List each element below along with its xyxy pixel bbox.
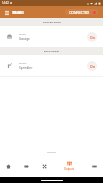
button[interactable]: More xyxy=(85,155,103,177)
button[interactable]: On xyxy=(87,32,97,42)
button[interactable]: Inputs xyxy=(17,155,35,177)
button[interactable]: CONNECTED xyxy=(65,9,98,15)
staticText: BACK ROOM xyxy=(44,50,60,53)
staticText: SYSWARM xyxy=(12,10,23,15)
button[interactable]: On xyxy=(87,61,97,71)
staticText: Sprinkler xyxy=(19,66,33,70)
button[interactable]: Rules xyxy=(35,155,53,177)
staticText: 14:32 xyxy=(2,1,9,5)
button[interactable]: Outputs xyxy=(53,155,85,177)
button[interactable]: PIN#1 xyxy=(0,26,103,47)
staticText: On xyxy=(90,35,95,40)
staticText: On xyxy=(90,64,95,69)
staticText: PIN#2 xyxy=(19,61,27,64)
staticText: Outputs xyxy=(64,167,74,171)
staticText: Garage xyxy=(19,37,30,41)
button[interactable]: Home xyxy=(0,155,17,177)
staticText: PIN#1 xyxy=(19,32,27,35)
button[interactable]: PIN#2 xyxy=(0,55,103,76)
staticText: GARAGE DOOR xyxy=(43,21,61,24)
staticText: CONNECTED xyxy=(69,10,90,15)
button[interactable]: Open navigation menu xyxy=(2,8,11,17)
